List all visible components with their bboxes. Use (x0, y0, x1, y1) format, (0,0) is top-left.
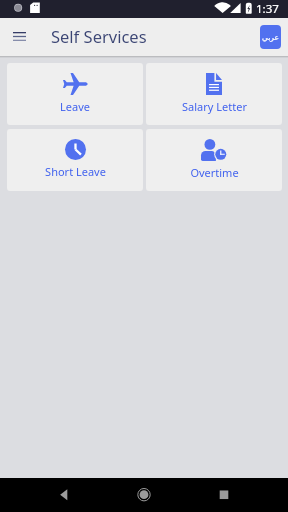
button[interactable]: عربي (260, 25, 281, 49)
button[interactable]: Salary Letter (146, 63, 282, 125)
staticText: 1:37 (256, 1, 279, 17)
staticText: Salary Letter (182, 99, 247, 114)
staticText: Self Services (51, 25, 147, 47)
button[interactable]: Leave (7, 63, 143, 125)
staticText: Short Leave (45, 164, 106, 179)
staticText: Overtime (190, 165, 239, 180)
staticText: Leave (60, 99, 90, 114)
button[interactable]: Overtime (146, 129, 282, 191)
staticText: عربي (262, 33, 279, 42)
button[interactable]: Short Leave (7, 129, 143, 191)
button[interactable]: Back (34, 478, 94, 512)
button[interactable]: Recent apps (194, 478, 254, 512)
button[interactable]: Open navigation menu (6, 23, 32, 49)
button[interactable]: Home (114, 478, 174, 512)
